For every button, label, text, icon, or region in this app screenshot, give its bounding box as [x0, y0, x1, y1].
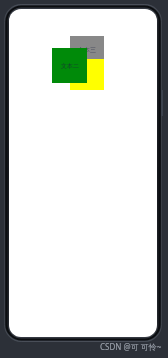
- staticText: CSDN @可 可怜~: [100, 341, 162, 352]
- staticText: 文本三: [78, 46, 96, 54]
- button[interactable]: 文本三: [70, 36, 104, 64]
- button[interactable]: 文本二: [52, 48, 87, 83]
- staticText: 文本二: [61, 62, 79, 70]
- button[interactable]: [70, 59, 104, 90]
